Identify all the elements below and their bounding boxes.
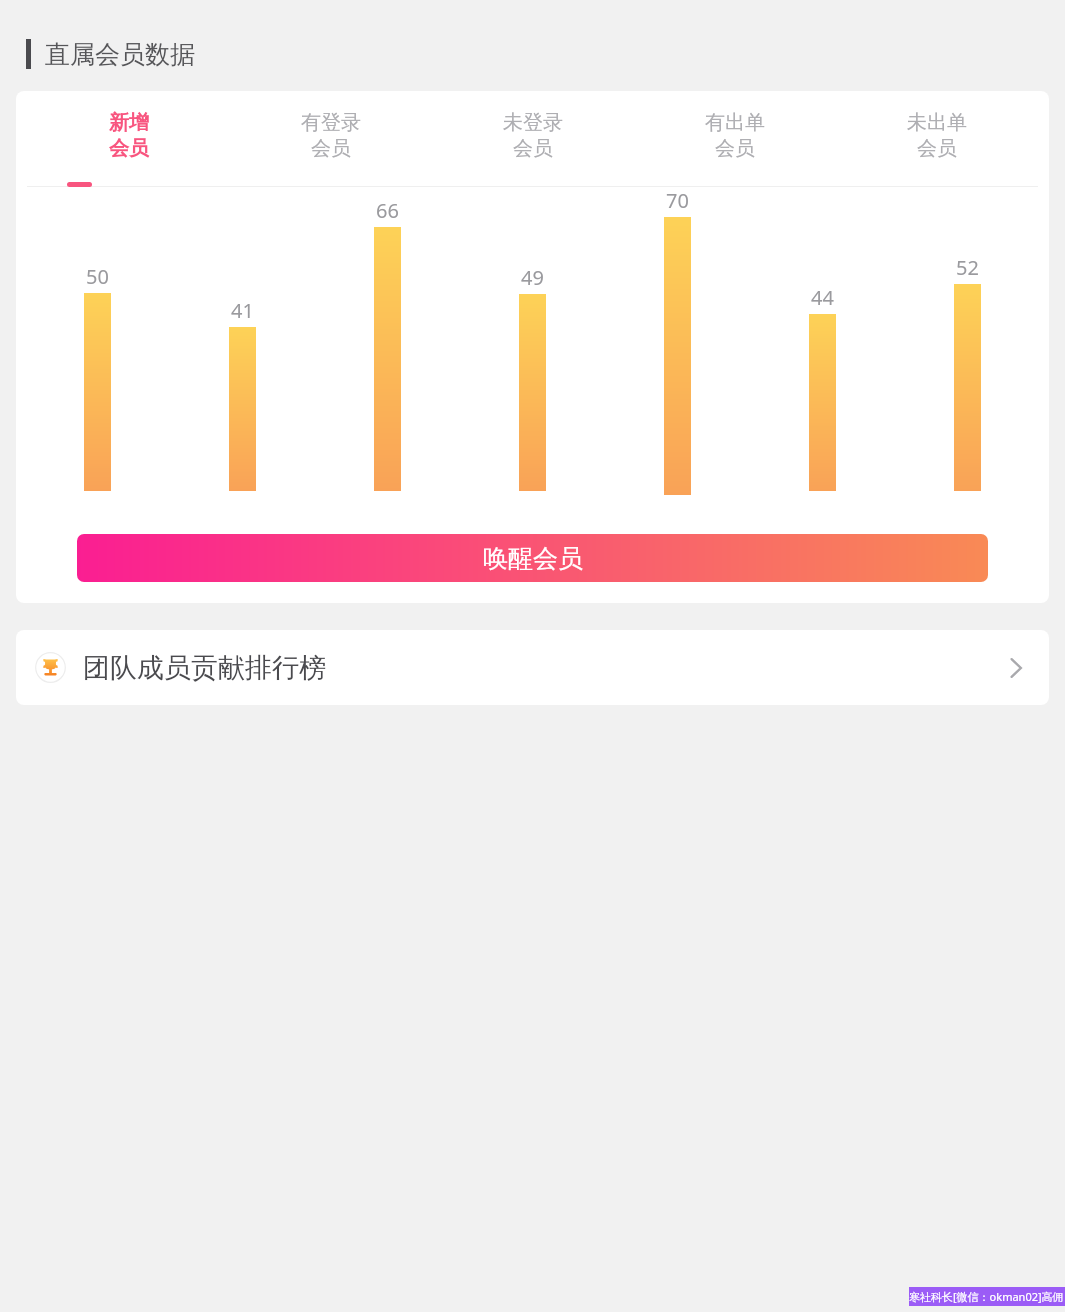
button[interactable]: 有出单 会员 (634, 110, 836, 168)
staticText: 有登录 会员 (301, 110, 361, 161)
staticText: 50 (86, 263, 109, 290)
staticText: 41 (231, 297, 254, 324)
staticText: 70 (666, 187, 689, 214)
staticText: 新增 会员 (109, 110, 149, 161)
button[interactable]: 未出单 会员 (836, 110, 1038, 168)
button[interactable]: 团队成员贡献排行榜 (16, 630, 1049, 705)
button[interactable]: 唤醒会员 (77, 534, 988, 582)
button[interactable]: 未登录 会员 (432, 110, 634, 168)
staticText: 未出单 会员 (907, 110, 967, 161)
staticText: 团队成员贡献排行榜 (83, 651, 326, 685)
staticText: 直属会员数据 (45, 39, 195, 70)
staticText: 52 (956, 254, 979, 281)
staticText: 有出单 会员 (705, 110, 765, 161)
staticText: 44 (811, 284, 834, 311)
button[interactable]: 有登录 会员 (230, 110, 432, 168)
other: 查看排行榜 (1002, 654, 1030, 682)
button[interactable]: 新增 会员 (27, 110, 230, 168)
staticText: 未登录 会员 (503, 110, 563, 161)
staticText: 寒社科长[微信：okman02]高佣联盟邀请码555666 (909, 1289, 1065, 1304)
staticText: 唤醒会员 (483, 543, 583, 574)
staticText: 66 (376, 197, 399, 224)
staticText: 49 (521, 264, 544, 291)
